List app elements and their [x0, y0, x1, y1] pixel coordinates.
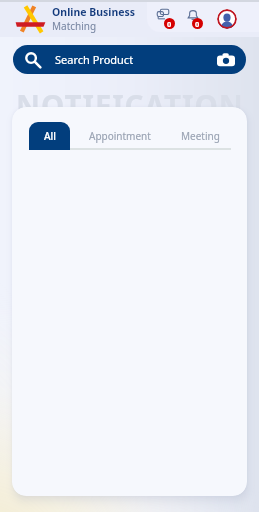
- staticText: All: [44, 129, 56, 143]
- button[interactable]: Notifications: [187, 9, 203, 29]
- staticText: Appointment: [89, 129, 151, 143]
- staticText: 0: [195, 19, 200, 29]
- staticText: 0: [167, 19, 172, 29]
- button[interactable]: All: [29, 122, 70, 150]
- staticText: NOTIFICATION: [16, 85, 244, 125]
- button[interactable]: Profile: [217, 9, 237, 29]
- button[interactable]: Meeting: [170, 122, 231, 150]
- button[interactable]: Search Product: [13, 45, 246, 74]
- staticText: Matching: [52, 19, 97, 33]
- button[interactable]: Appointment: [70, 122, 170, 150]
- staticText: Search Product: [55, 52, 134, 67]
- staticText: Online Business: [52, 5, 136, 19]
- staticText: Meeting: [181, 129, 220, 143]
- button[interactable]: Messages: [157, 9, 175, 29]
